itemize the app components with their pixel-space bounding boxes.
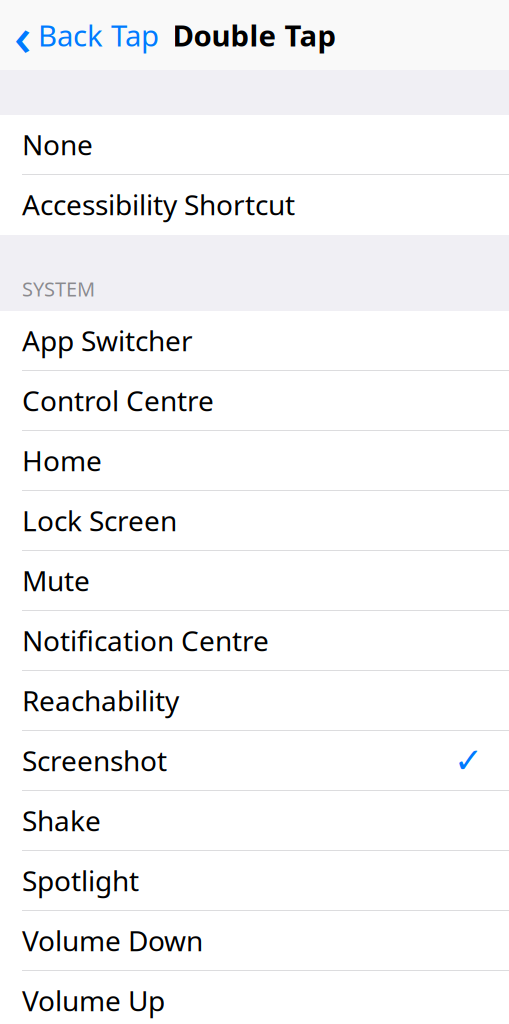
staticText: ‹ — [14, 0, 31, 70]
button[interactable]: Reachability — [0, 671, 509, 731]
staticText: Screenshot — [22, 742, 167, 779]
button[interactable]: Screenshot — [0, 731, 509, 791]
staticText: Back Tap — [38, 15, 159, 54]
button[interactable]: Accessibility Shortcut — [0, 175, 509, 235]
staticText: Accessibility Shortcut — [22, 186, 295, 223]
staticText: None — [22, 126, 93, 163]
staticText: Volume Up — [22, 982, 165, 1019]
button[interactable]: Volume Down — [0, 911, 509, 971]
staticText: Lock Screen — [22, 502, 177, 539]
button[interactable]: Mute — [0, 551, 509, 611]
staticText: Notification Centre — [22, 622, 269, 659]
staticText: Control Centre — [22, 382, 214, 419]
button[interactable]: Volume Up — [0, 971, 509, 1024]
button[interactable]: App Switcher — [0, 311, 509, 371]
button[interactable]: Shake — [0, 791, 509, 851]
button[interactable]: Lock Screen — [0, 491, 509, 551]
staticText: Shake — [22, 802, 101, 839]
button[interactable]: Control Centre — [0, 371, 509, 431]
staticText: Volume Down — [22, 922, 203, 959]
staticText: ✓ — [454, 741, 483, 780]
staticText: App Switcher — [22, 322, 193, 359]
staticText: Reachability — [22, 682, 179, 719]
button[interactable]: None — [0, 115, 509, 175]
staticText: Mute — [22, 562, 90, 599]
button[interactable]: Notification Centre — [0, 611, 509, 671]
staticText: Home — [22, 442, 102, 479]
button[interactable]: Home — [0, 431, 509, 491]
button[interactable]: ‹ — [0, 9, 169, 61]
button[interactable]: Spotlight — [0, 851, 509, 911]
staticText: Double Tap — [172, 15, 336, 54]
staticText: Spotlight — [22, 862, 139, 899]
staticText: SYSTEM — [22, 275, 95, 302]
